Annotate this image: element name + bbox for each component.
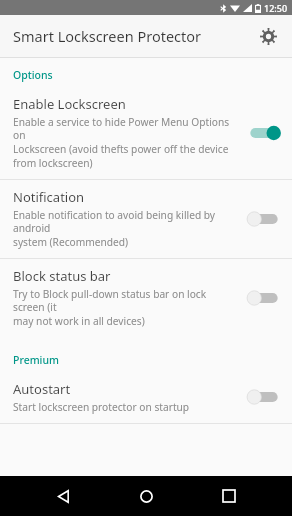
button[interactable]: Block status bar (0, 259, 292, 337)
staticText: Autostart (13, 380, 71, 398)
button[interactable]: Home (126, 476, 166, 516)
staticText: may not work in all devices) (13, 314, 145, 328)
button[interactable]: Settings (252, 20, 284, 52)
button[interactable]: Autostart (0, 372, 292, 423)
button[interactable]: Recents (209, 476, 249, 516)
button[interactable]: Toggle off (246, 385, 282, 409)
staticText: Lockscreen (avoid thefts power off the d… (13, 142, 229, 156)
staticText: Enable notification to avoid being kille… (13, 208, 240, 235)
staticText: Options (13, 68, 53, 82)
staticText: Start lockscreen protector on startup (13, 400, 190, 414)
staticText: Block status bar (13, 267, 111, 285)
button[interactable]: Toggle off (246, 286, 282, 310)
staticText: Notification (13, 188, 85, 206)
staticText: Try to Block pull-down status bar on loc… (13, 287, 240, 314)
button[interactable]: Toggle off (246, 207, 282, 231)
staticText: Enable Lockscreen (13, 95, 126, 113)
button[interactable]: Enable Lockscreen (0, 87, 292, 179)
staticText: system (Recommended) (13, 235, 129, 249)
button[interactable]: Toggle on (246, 121, 282, 145)
staticText: from lockscreen) (13, 156, 93, 170)
staticText: Premium (13, 353, 59, 367)
button[interactable]: Notification (0, 180, 292, 258)
staticText: Smart Lockscreen Protector (13, 26, 202, 46)
staticText: Enable a service to hide Power Menu Opti… (13, 115, 240, 142)
button[interactable]: Back (43, 476, 83, 516)
staticText: 12:50 (264, 2, 288, 14)
